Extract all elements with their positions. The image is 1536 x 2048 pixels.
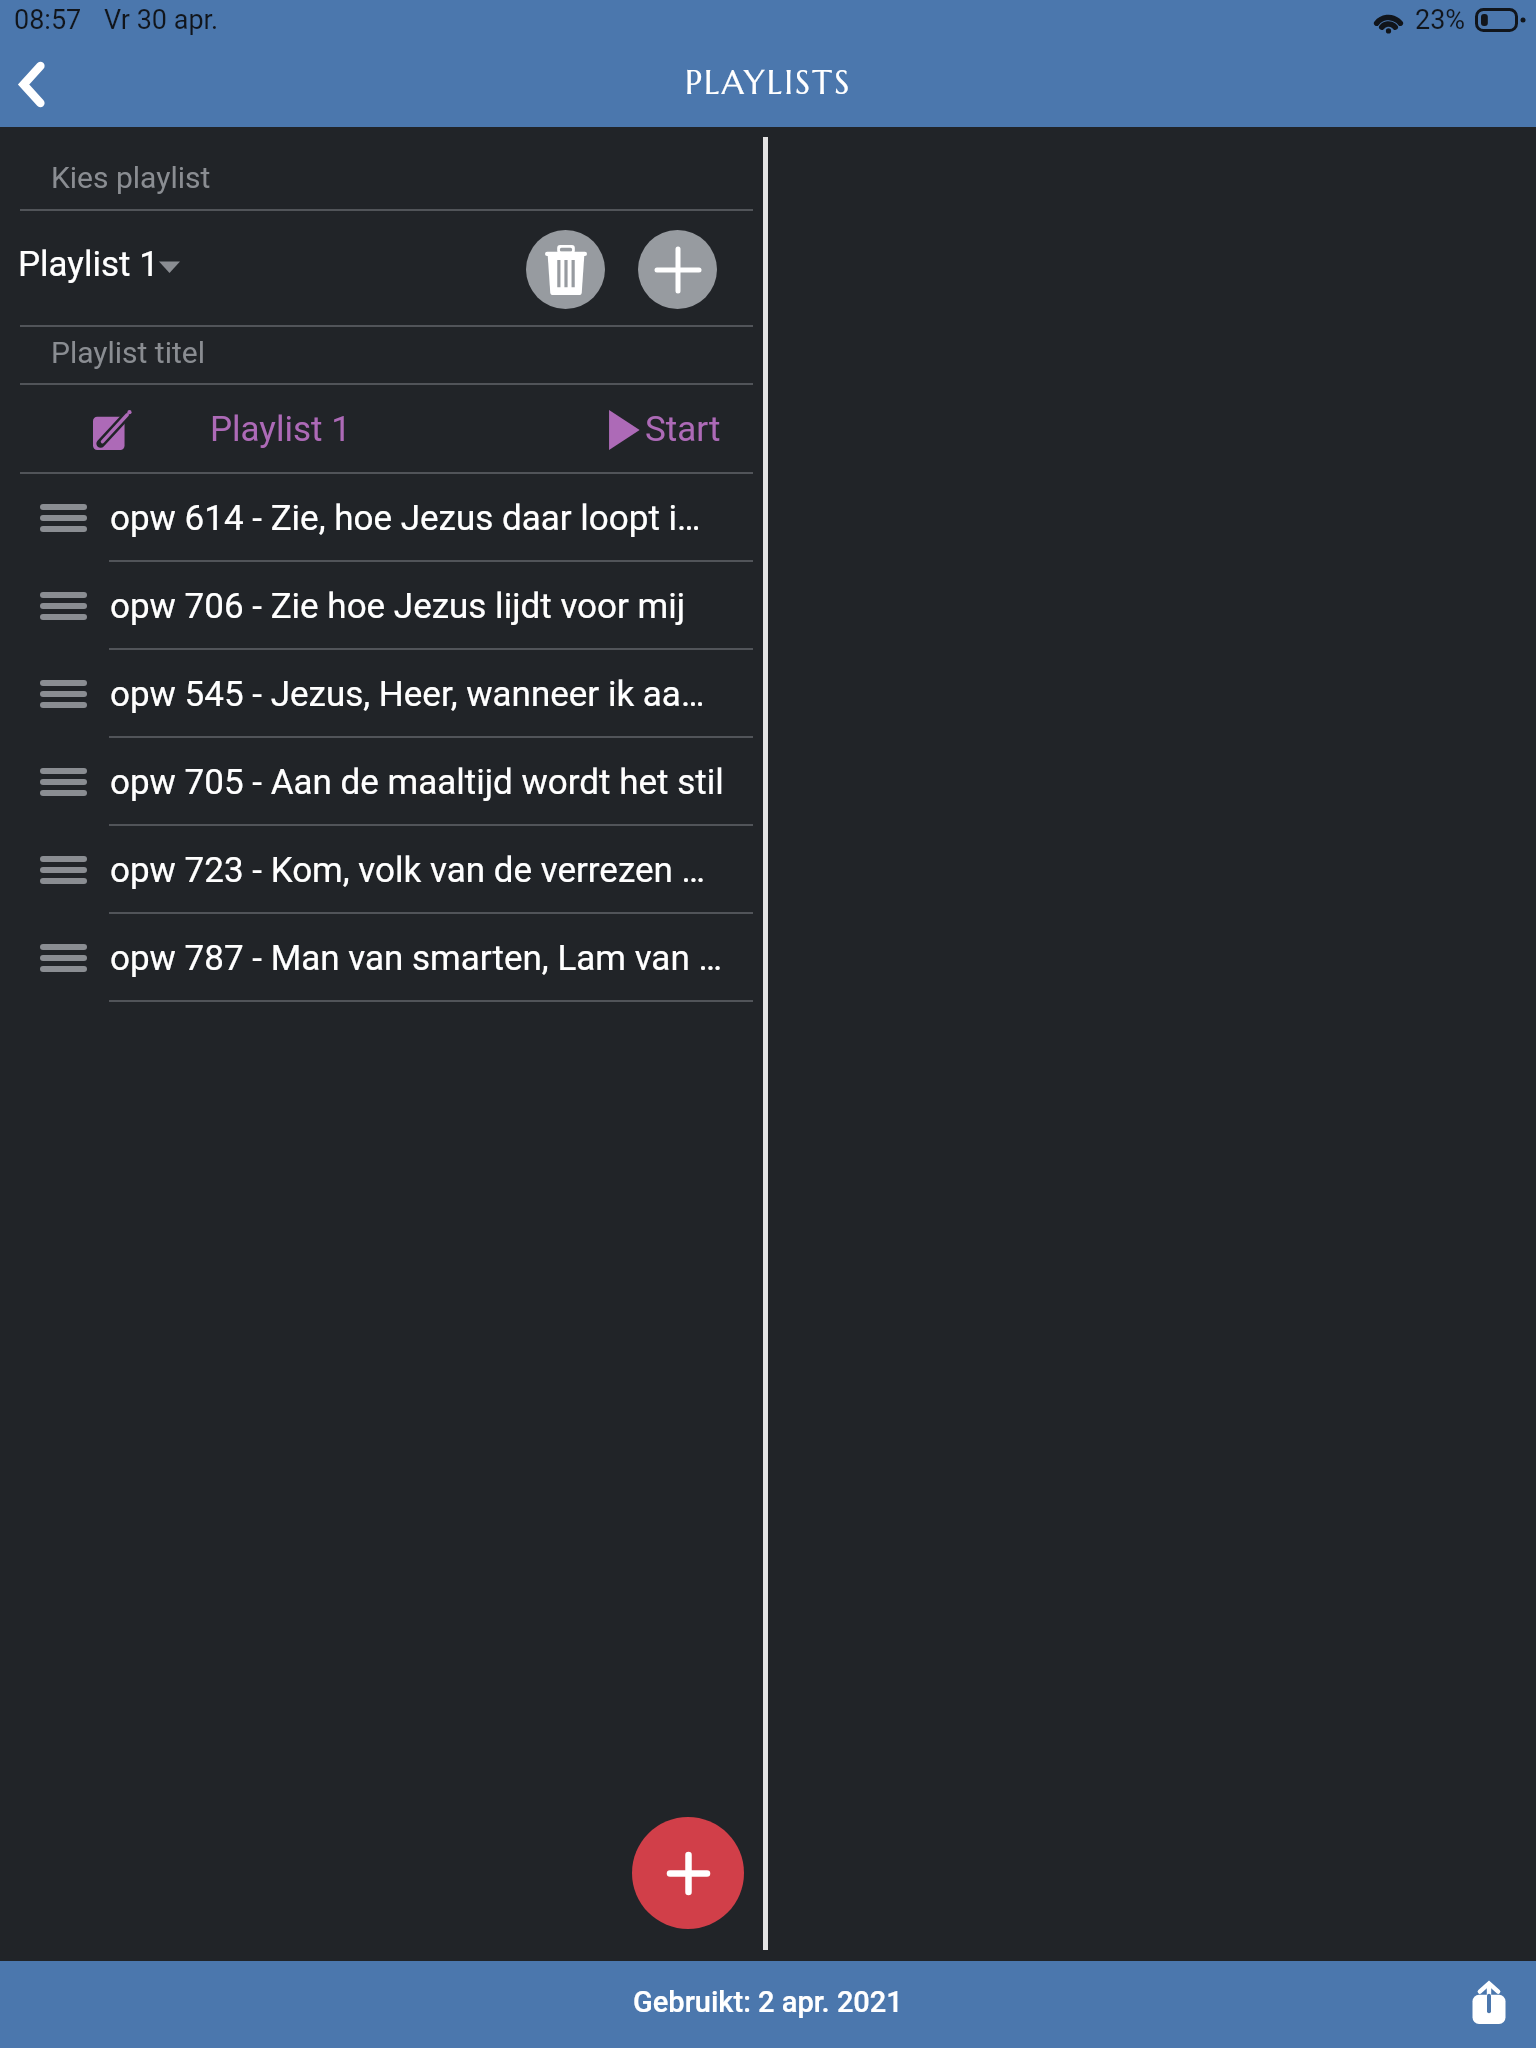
staticText: Playlist titel (51, 335, 205, 370)
button[interactable]: opw 614 - Zie, hoe Jezus daar loopt i… (0, 474, 763, 562)
staticText: Playlist 1 (210, 409, 351, 450)
staticText: opw 705 - Aan de maaltijd wordt het stil (110, 762, 724, 803)
button[interactable]: Playlist 1 (0, 385, 763, 474)
button[interactable]: Back (0, 46, 70, 122)
button[interactable]: opw 705 - Aan de maaltijd wordt het stil (0, 738, 763, 826)
staticText: 23% (1415, 4, 1466, 36)
staticText: Vr 30 apr. (104, 4, 219, 36)
staticText: opw 706 - Zie hoe Jezus lijdt voor mij (110, 586, 686, 627)
staticText: opw 723 - Kom, volk van de verrezen … (110, 850, 705, 891)
button[interactable]: opw 545 - Jezus, Heer, wanneer ik aa… (0, 650, 763, 738)
button[interactable]: Playlist 1 (18, 246, 180, 287)
button[interactable]: opw 787 - Man van smarten, Lam van … (0, 914, 763, 1002)
button[interactable]: Start (607, 385, 721, 474)
staticText: opw 614 - Zie, hoe Jezus daar loopt i… (110, 498, 701, 539)
staticText: PLAYLISTS (685, 62, 852, 103)
staticText: opw 545 - Jezus, Heer, wanneer ik aa… (110, 674, 705, 715)
button[interactable]: Playlist titel (0, 327, 763, 385)
staticText: opw 787 - Man van smarten, Lam van … (110, 938, 722, 979)
staticText: 08:57 (14, 4, 82, 36)
staticText: Kies playlist (51, 160, 211, 195)
button[interactable]: Share (1458, 1971, 1520, 2033)
staticText: Gebruikt: 2 apr. 2021 (633, 1985, 903, 2019)
button[interactable]: Add playlist (638, 230, 717, 309)
button[interactable]: Add song (632, 1817, 744, 1929)
button[interactable]: opw 723 - Kom, volk van de verrezen … (0, 826, 763, 914)
button[interactable]: Delete playlist (526, 230, 605, 309)
button[interactable]: opw 706 - Zie hoe Jezus lijdt voor mij (0, 562, 763, 650)
staticText: Start (645, 409, 721, 450)
button[interactable]: Kies playlist (0, 127, 763, 211)
staticText: Playlist 1 (18, 244, 159, 285)
